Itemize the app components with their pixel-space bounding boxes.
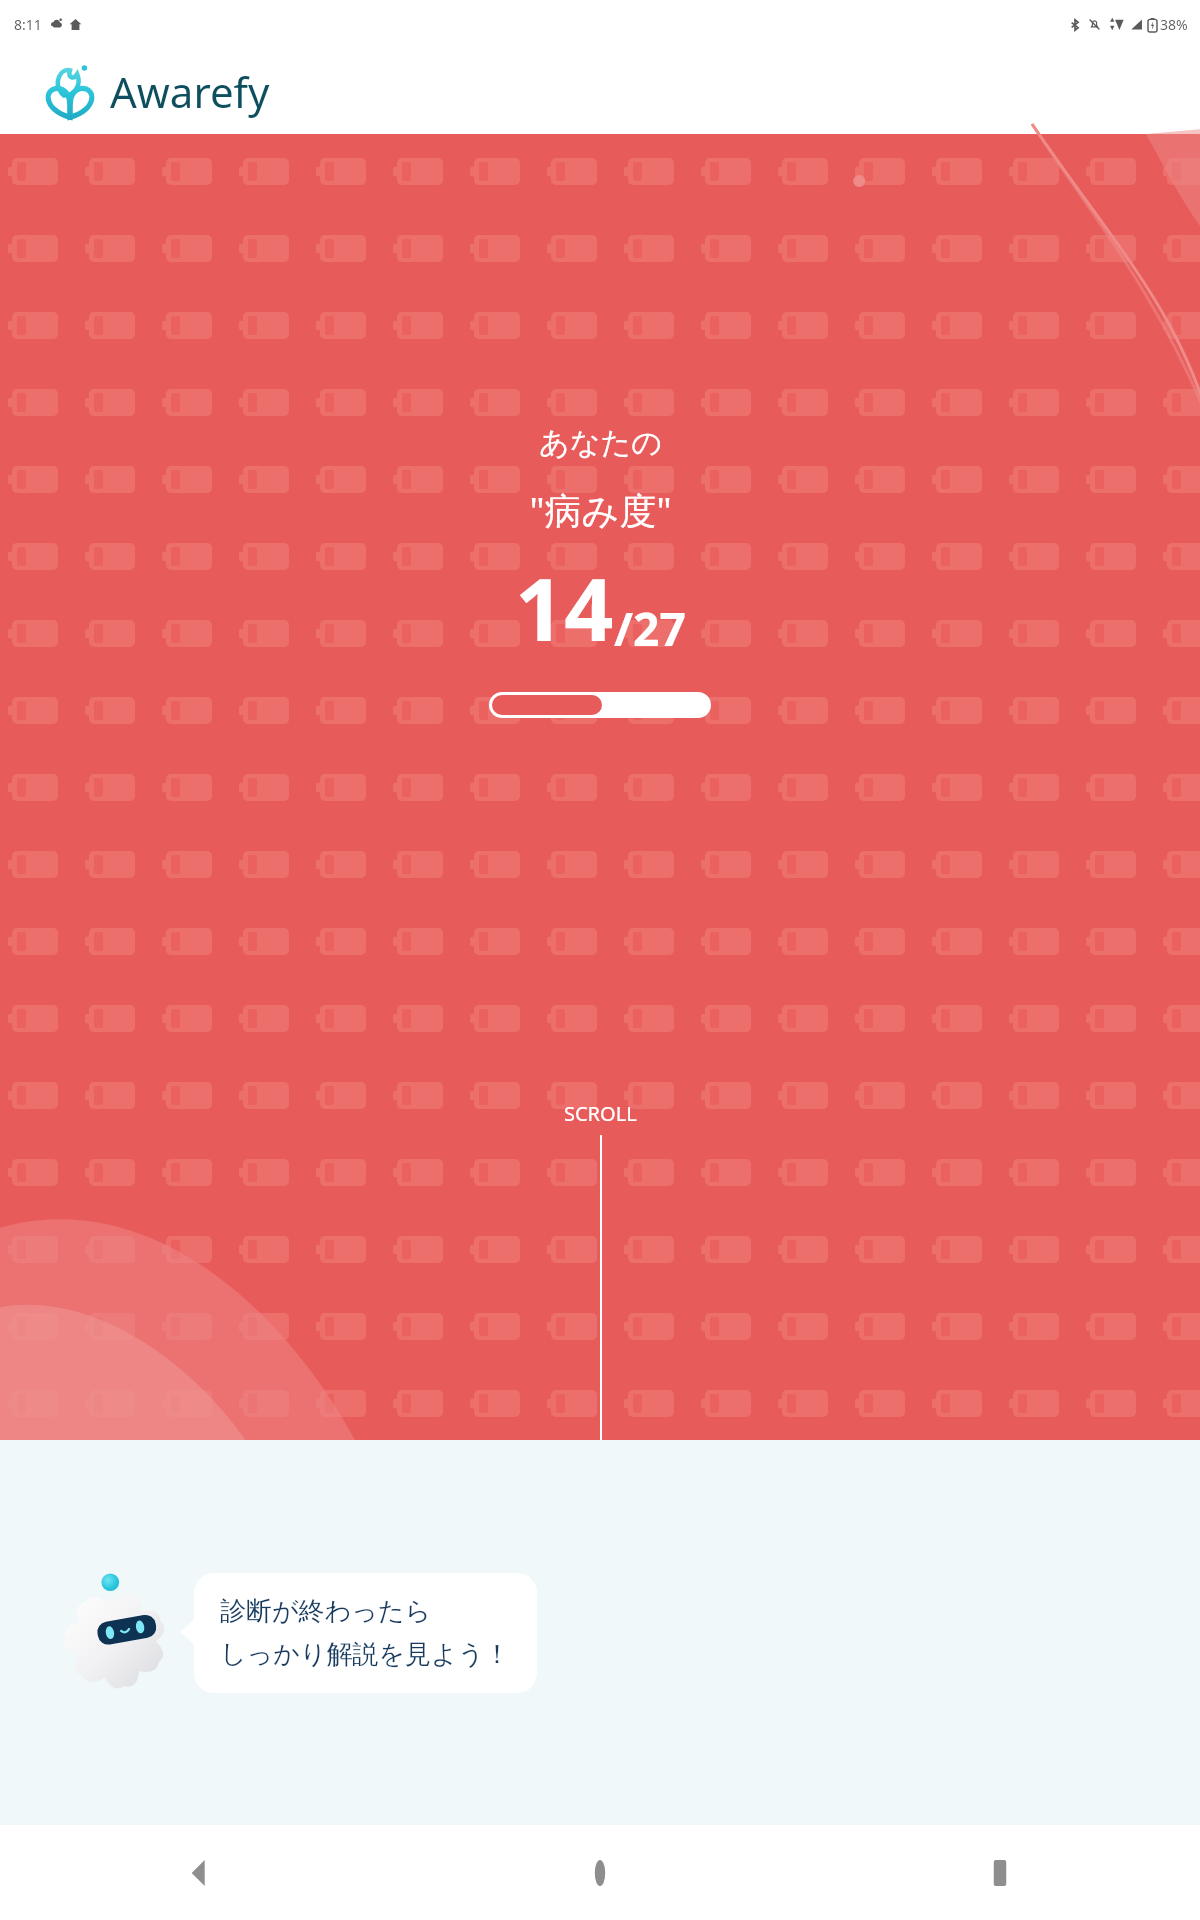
- staticText: 14: [515, 549, 614, 666]
- button[interactable]: Back: [0, 1825, 400, 1920]
- staticText: SCROLL: [564, 1100, 637, 1127]
- staticText: 8:11: [14, 15, 42, 34]
- staticText: あなたの: [539, 424, 662, 462]
- staticText: 診断が終わったら: [220, 1595, 432, 1628]
- staticText: /27: [614, 597, 686, 660]
- staticText: "病み度": [529, 484, 672, 535]
- staticText: しっかり解説を見よう！: [220, 1638, 511, 1671]
- button[interactable]: Recent apps: [800, 1825, 1200, 1920]
- staticText: Awarefy: [110, 63, 270, 120]
- button[interactable]: Home: [400, 1825, 800, 1920]
- button[interactable]: 診断が終わったら: [180, 1573, 537, 1693]
- staticText: 38%: [1160, 15, 1188, 34]
- button[interactable]: [489, 692, 711, 718]
- button[interactable]: Awarefy: [0, 49, 1200, 134]
